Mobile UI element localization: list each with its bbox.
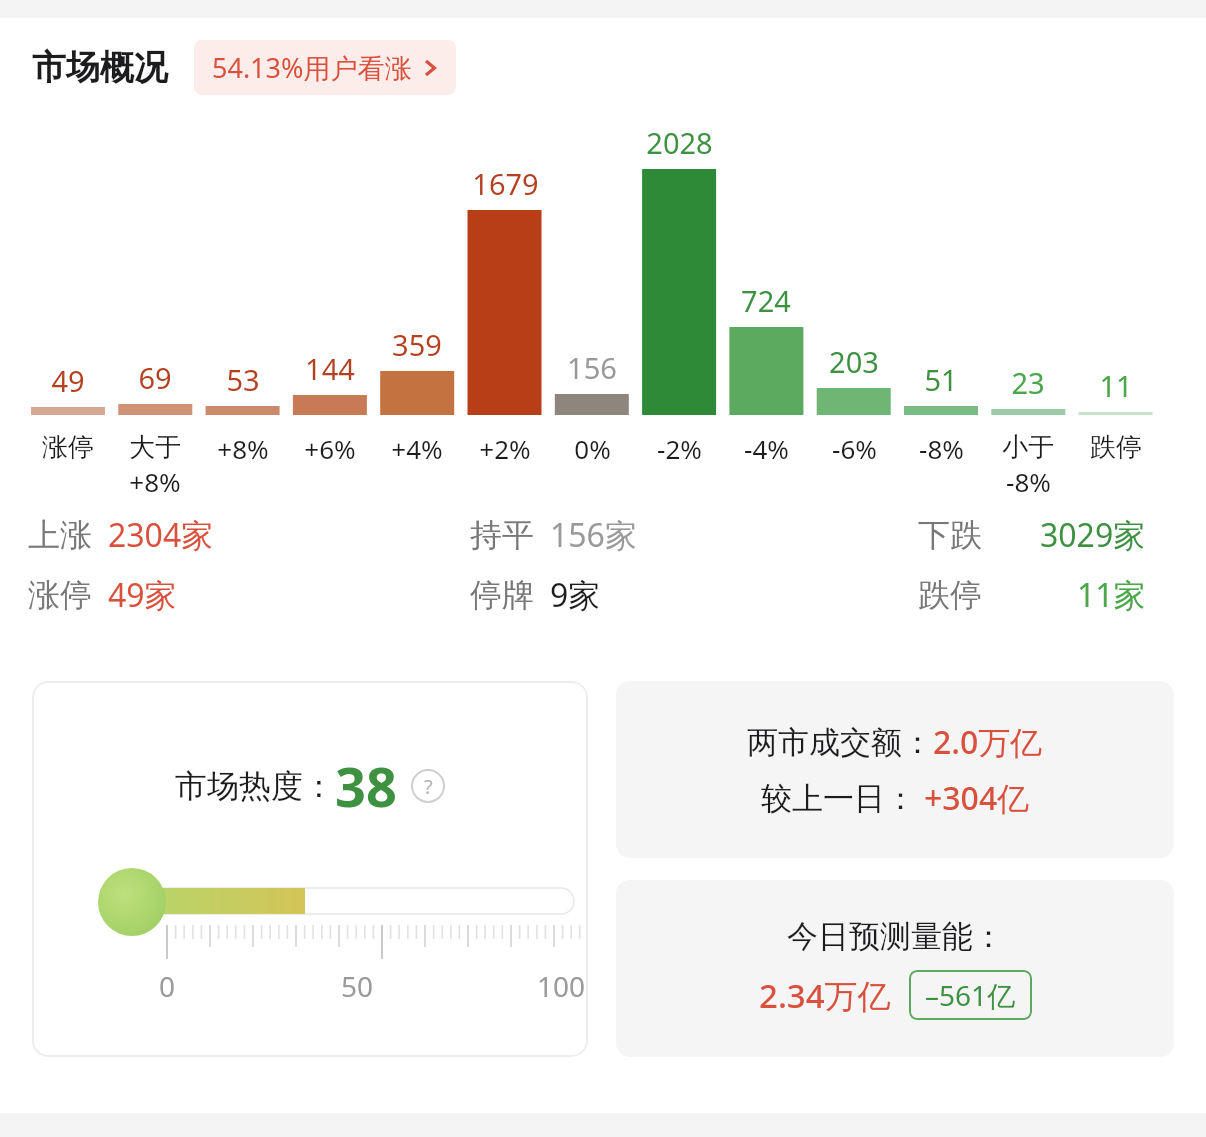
button[interactable]: 帮助说明 <box>411 769 445 803</box>
button[interactable]: 小于 <box>985 431 1071 499</box>
staticText: 2.34万亿 <box>759 973 891 1018</box>
staticText: 较上一日： <box>761 779 916 818</box>
staticText: 市场热度： <box>175 766 335 806</box>
staticText: 1679 <box>472 164 539 203</box>
button[interactable]: 涨停 <box>28 573 177 617</box>
staticText: 停牌 <box>470 575 534 615</box>
staticText: 跌停 <box>918 575 982 615</box>
button[interactable]: 停牌 <box>470 573 601 617</box>
staticText: 大于 <box>129 431 181 464</box>
staticText: 11家 <box>1077 573 1146 617</box>
button[interactable]: 上涨 <box>28 513 214 557</box>
staticText: 0 <box>159 967 176 1005</box>
staticText: 203 <box>829 342 879 381</box>
staticText: 54.13%用户看涨 <box>212 49 412 86</box>
button[interactable]: 54.13%用户看涨 <box>194 40 456 95</box>
button[interactable]: 跌停 <box>1073 431 1159 464</box>
staticText: -8% <box>919 431 964 466</box>
button[interactable]: +2% <box>462 431 548 466</box>
staticText: 涨停 <box>28 575 92 615</box>
staticText: 3029家 <box>1040 513 1146 557</box>
button[interactable]: 下跌 <box>918 513 1146 557</box>
staticText: 53 <box>226 360 260 399</box>
staticText: 23 <box>1011 363 1045 402</box>
staticText: 2.0万亿 <box>933 720 1043 764</box>
button[interactable]: +4% <box>374 431 460 466</box>
button[interactable]: +8% <box>200 431 286 466</box>
button[interactable]: 两市成交额： <box>616 681 1174 858</box>
staticText: 2028 <box>646 123 713 162</box>
staticText: 下跌 <box>918 515 982 555</box>
staticText: 0% <box>574 431 611 466</box>
staticText: 38 <box>335 749 397 823</box>
staticText: 2304家 <box>108 513 214 557</box>
staticText: 涨停 <box>42 431 94 464</box>
button[interactable]: –561亿 <box>909 970 1032 1020</box>
button[interactable]: -6% <box>811 431 897 466</box>
staticText: 156家 <box>550 513 637 557</box>
staticText: +8% <box>217 431 269 466</box>
staticText: 49家 <box>108 573 177 617</box>
staticText: 上涨 <box>28 515 92 555</box>
staticText: 156 <box>567 348 617 387</box>
button[interactable]: +6% <box>287 431 373 466</box>
button[interactable]: 大于 <box>112 431 198 499</box>
staticText: 小于 <box>1002 431 1054 464</box>
button[interactable]: 持平 <box>470 513 637 557</box>
button[interactable]: 涨停 <box>25 431 111 464</box>
staticText: 11 <box>1099 366 1133 405</box>
button[interactable]: 市场热度： <box>32 681 588 1057</box>
button[interactable]: 0% <box>549 431 635 466</box>
staticText: 市场概况 <box>32 46 168 89</box>
staticText: 两市成交额： <box>747 723 933 762</box>
staticText: -8% <box>1006 464 1051 499</box>
staticText: 9家 <box>550 573 601 617</box>
staticText: +4% <box>391 431 443 466</box>
staticText: 49 <box>51 361 85 400</box>
staticText: -2% <box>657 431 702 466</box>
staticText: 359 <box>392 325 442 364</box>
staticText: ? <box>424 773 433 800</box>
staticText: 100 <box>537 967 586 1005</box>
staticText: 724 <box>741 281 791 320</box>
staticText: +304亿 <box>924 776 1030 820</box>
staticText: 69 <box>138 358 172 397</box>
staticText: -4% <box>744 431 789 466</box>
staticText: 持平 <box>470 515 534 555</box>
button[interactable]: -2% <box>636 431 722 466</box>
staticText: –561亿 <box>925 976 1016 1014</box>
button[interactable]: -8% <box>898 431 984 466</box>
staticText: +6% <box>304 431 356 466</box>
button[interactable]: -4% <box>723 431 809 466</box>
staticText: 51 <box>924 360 958 399</box>
staticText: 今日预测量能： <box>787 917 1004 956</box>
staticText: 50 <box>341 967 374 1005</box>
button[interactable]: 今日预测量能： <box>616 880 1174 1057</box>
staticText: +8% <box>129 464 181 499</box>
button[interactable]: 跌停 <box>918 573 1146 617</box>
staticText: 144 <box>305 349 355 388</box>
staticText: +2% <box>479 431 531 466</box>
staticText: -6% <box>832 431 877 466</box>
staticText: 跌停 <box>1090 431 1142 464</box>
